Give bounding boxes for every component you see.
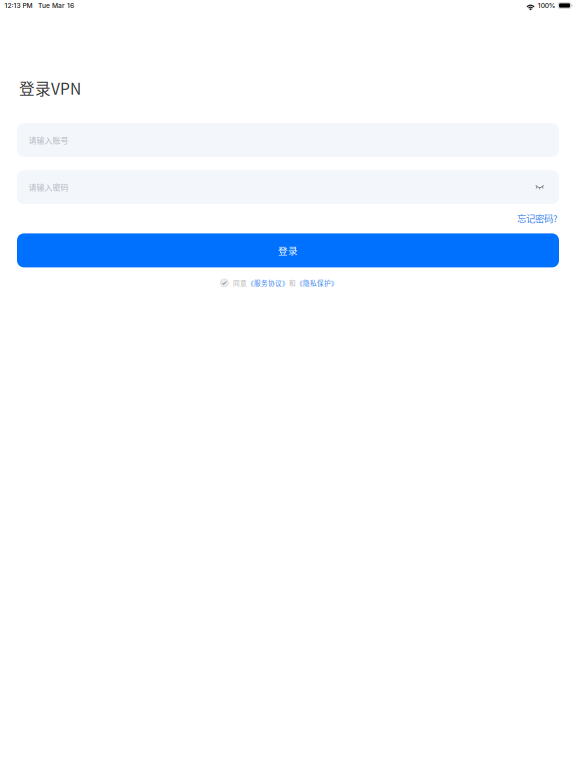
button[interactable]: 《隐私保护》 <box>296 278 338 288</box>
staticText: 同意 <box>233 278 247 288</box>
staticText: 忘记密码? <box>517 211 557 225</box>
staticText: 《服务协议》 <box>247 278 289 288</box>
staticText: 请输入密码 <box>28 181 68 193</box>
button[interactable]: Show password <box>529 178 550 196</box>
staticText: 登录VPN <box>19 77 81 99</box>
button[interactable]: Agree to terms <box>220 279 228 287</box>
staticText: 请输入账号 <box>28 134 68 146</box>
staticText: 和 <box>289 278 296 288</box>
button[interactable]: 《服务协议》 <box>247 278 289 288</box>
staticText: 登录 <box>278 243 298 257</box>
staticText: 12:13 PM <box>4 1 32 10</box>
button[interactable]: 忘记密码? <box>517 211 557 225</box>
staticText: 100% <box>538 1 556 10</box>
staticText: 《隐私保护》 <box>296 278 338 288</box>
staticText: Tue Mar 16 <box>38 1 74 10</box>
button[interactable]: 登录 <box>17 233 559 267</box>
